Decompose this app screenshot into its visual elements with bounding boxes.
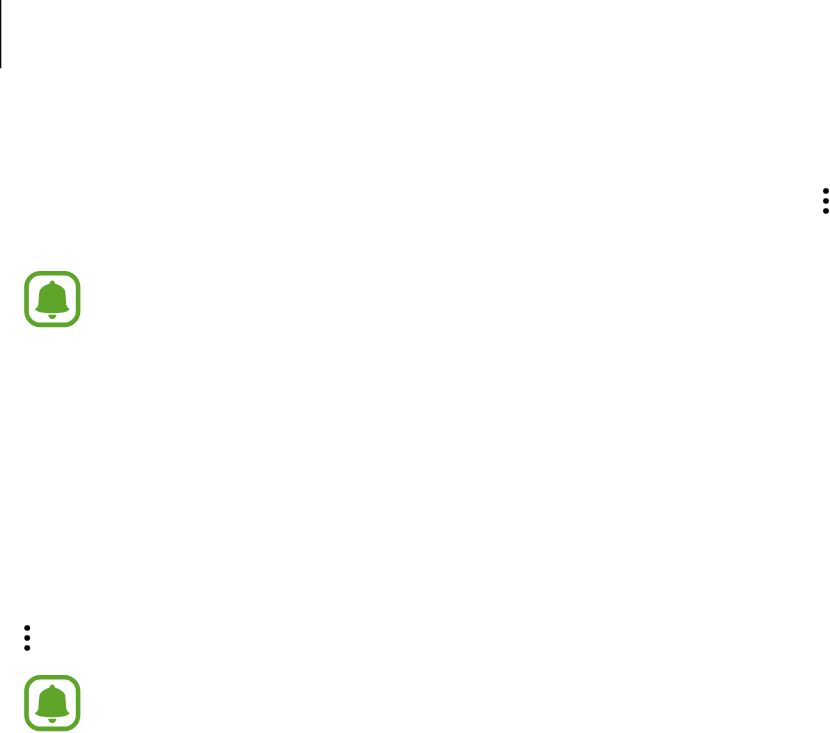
button[interactable]: Notifications (24, 271, 80, 327)
button[interactable]: More options (13, 624, 43, 652)
button[interactable]: More options (812, 187, 830, 215)
button[interactable]: Notifications (24, 675, 80, 731)
